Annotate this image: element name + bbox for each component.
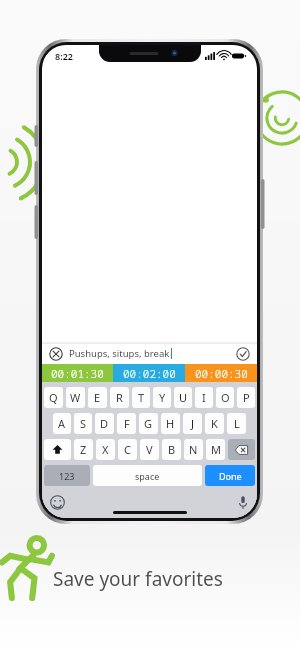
button[interactable]: K: [205, 413, 224, 434]
button[interactable]: 00:01:30: [42, 364, 113, 382]
button[interactable]: X: [96, 439, 115, 460]
button[interactable]: P: [237, 387, 255, 408]
button[interactable]: L: [227, 413, 246, 434]
staticText: X: [102, 442, 109, 457]
staticText: K: [211, 416, 218, 431]
staticText: Save your favorites: [53, 566, 223, 592]
staticText: O: [221, 390, 230, 405]
staticText: M: [211, 442, 221, 457]
staticText: J: [191, 416, 195, 431]
staticText: L: [234, 416, 240, 431]
button[interactable]: T: [132, 387, 150, 408]
staticText: Done: [219, 470, 242, 482]
button[interactable]: Done: [205, 465, 255, 486]
button[interactable]: F: [117, 413, 136, 434]
staticText: space: [135, 470, 160, 482]
button[interactable]: H: [161, 413, 180, 434]
button[interactable]: G: [139, 413, 158, 434]
button[interactable]: Confirm: [236, 347, 250, 361]
staticText: 8:22: [55, 50, 73, 62]
button[interactable]: C: [118, 439, 137, 460]
button[interactable]: Q: [44, 387, 63, 408]
staticText: A: [58, 416, 66, 431]
button[interactable]: J: [183, 413, 202, 434]
button[interactable]: space: [93, 465, 202, 486]
staticText: C: [124, 442, 131, 457]
button[interactable]: I: [195, 387, 213, 408]
button[interactable]: W: [66, 387, 85, 408]
staticText: P: [243, 390, 250, 405]
button[interactable]: Z: [74, 439, 93, 460]
staticText: Q: [49, 390, 58, 405]
button[interactable]: O: [216, 387, 234, 408]
staticText: V: [146, 442, 153, 457]
staticText: I: [202, 390, 206, 405]
button[interactable]: M: [206, 439, 225, 460]
staticText: R: [116, 390, 123, 405]
staticText: S: [80, 416, 87, 431]
button[interactable]: Clear text: [49, 347, 63, 361]
staticText: G: [144, 416, 153, 431]
button[interactable]: 00:00:30: [185, 364, 257, 382]
staticText: W: [70, 390, 81, 405]
button[interactable]: N: [184, 439, 203, 460]
button[interactable]: E: [88, 387, 107, 408]
staticText: B: [168, 442, 176, 457]
staticText: F: [124, 416, 130, 431]
staticText: Z: [80, 442, 87, 457]
button[interactable]: R: [110, 387, 129, 408]
button[interactable]: D: [95, 413, 114, 434]
staticText: Pushups, situps, break: [69, 347, 170, 360]
staticText: Y: [159, 390, 166, 405]
button[interactable]: A: [53, 413, 71, 434]
staticText: 123: [59, 470, 75, 482]
button[interactable]: Emoji keyboard: [50, 495, 65, 510]
button[interactable]: Shift: [44, 439, 71, 460]
staticText: N: [189, 442, 198, 457]
button[interactable]: V: [140, 439, 159, 460]
staticText: E: [94, 390, 101, 405]
staticText: T: [138, 390, 145, 405]
button[interactable]: 123: [44, 465, 90, 486]
button[interactable]: B: [162, 439, 181, 460]
button[interactable]: U: [174, 387, 192, 408]
button[interactable]: Y: [153, 387, 171, 408]
button[interactable]: Dictation: [238, 495, 248, 510]
button[interactable]: Backspace: [228, 439, 255, 460]
button[interactable]: 00:02:00: [113, 364, 185, 382]
button[interactable]: S: [74, 413, 92, 434]
staticText: H: [166, 416, 175, 431]
staticText: U: [179, 390, 188, 405]
staticText: 00:00:30: [195, 366, 248, 381]
staticText: 00:01:30: [51, 366, 104, 381]
staticText: 00:02:00: [123, 366, 176, 381]
staticText: D: [100, 416, 109, 431]
